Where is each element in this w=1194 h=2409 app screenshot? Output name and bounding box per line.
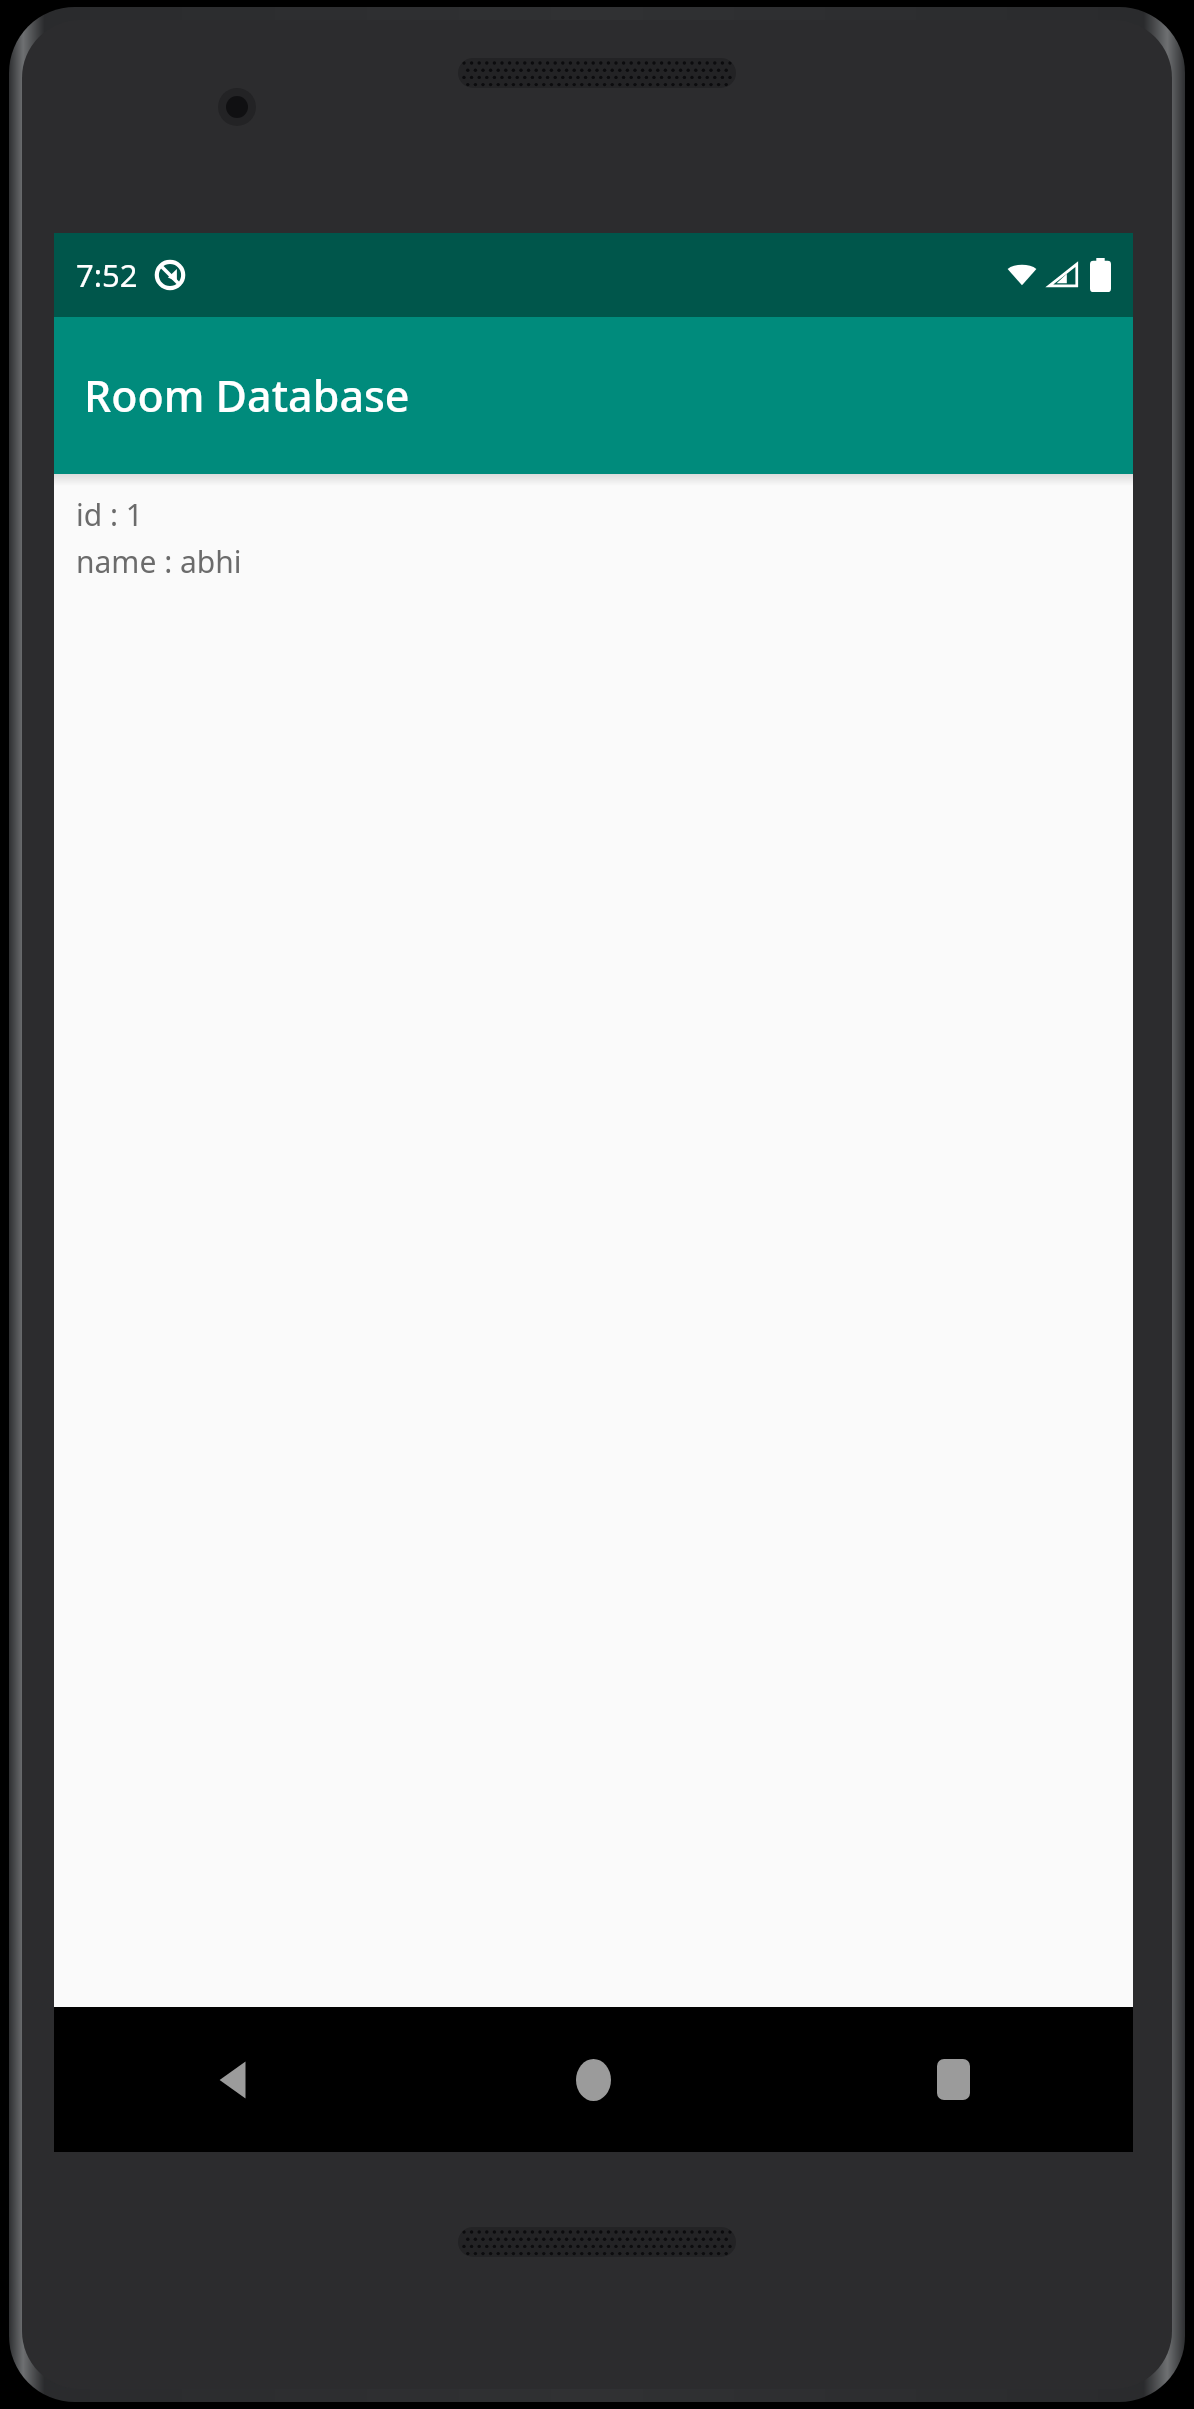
button[interactable]: Home [413, 2007, 773, 2152]
button[interactable]: Back [54, 2007, 413, 2152]
staticText: 7:52 [76, 254, 138, 296]
staticText: Room Database [84, 366, 410, 425]
staticText: id : 1 [76, 494, 143, 535]
staticText: name : abhi [76, 541, 242, 582]
button[interactable]: Recents [773, 2007, 1133, 2152]
